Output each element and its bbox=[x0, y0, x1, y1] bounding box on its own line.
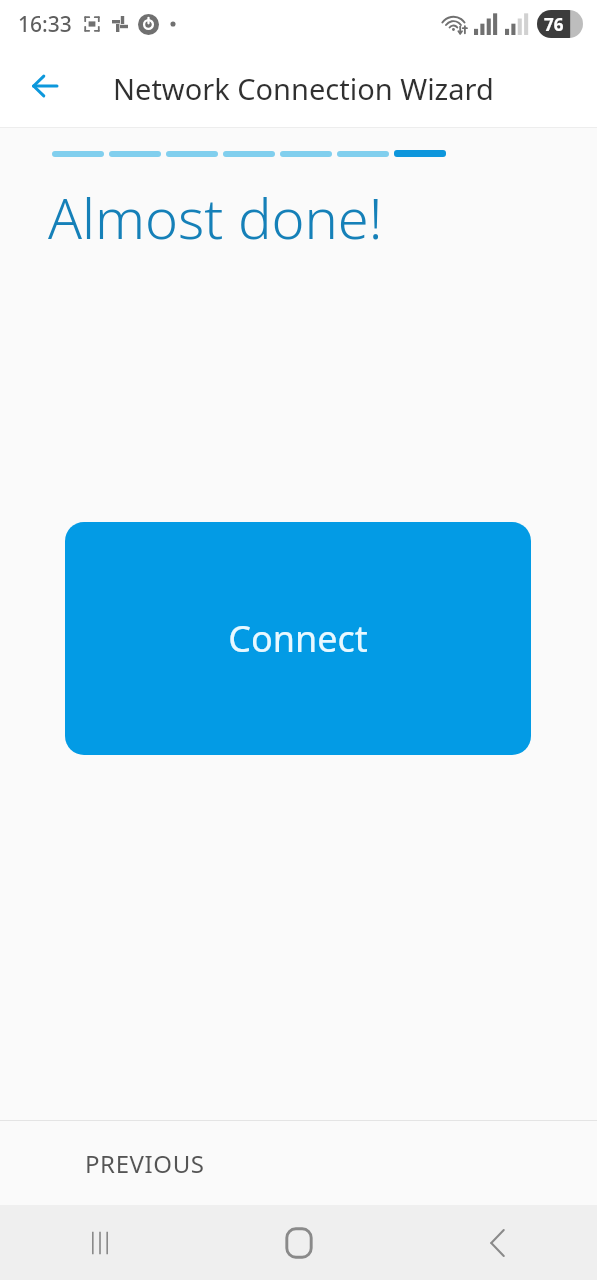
staticText: Almost done! bbox=[48, 179, 383, 255]
button[interactable]: PREVIOUS bbox=[85, 1147, 205, 1180]
button[interactable]: Recent apps bbox=[0, 1205, 199, 1280]
button[interactable]: Home bbox=[199, 1205, 398, 1280]
staticText: PREVIOUS bbox=[85, 1147, 205, 1180]
button[interactable]: Back bbox=[17, 58, 73, 114]
staticText: Network Connection Wizard bbox=[113, 69, 494, 108]
button[interactable]: Back bbox=[398, 1205, 597, 1280]
button[interactable]: Connect bbox=[65, 522, 531, 755]
staticText: 16:33 bbox=[18, 10, 72, 39]
staticText: Connect bbox=[228, 614, 368, 663]
staticText: 76 bbox=[544, 13, 564, 36]
